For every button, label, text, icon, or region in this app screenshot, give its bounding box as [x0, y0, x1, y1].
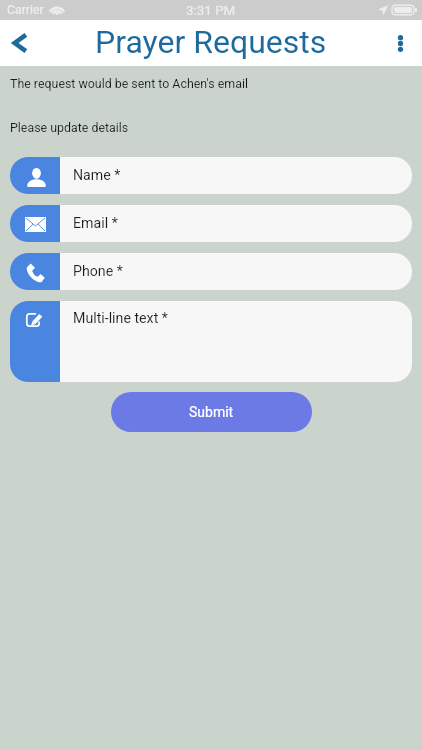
- button[interactable]: Back: [0, 23, 40, 63]
- staticText: 3:31 PM: [186, 3, 236, 19]
- staticText: Prayer Requests: [95, 23, 327, 61]
- button[interactable]: Phone *: [10, 253, 412, 290]
- staticText: Carrier: [7, 3, 44, 17]
- button[interactable]: Submit: [111, 392, 312, 432]
- staticText: Multi-line text *: [73, 310, 168, 327]
- staticText: Email *: [73, 215, 118, 232]
- staticText: Submit: [189, 404, 234, 420]
- staticText: Name *: [73, 167, 121, 184]
- button[interactable]: More options: [378, 21, 422, 65]
- staticText: The request would be sent to Achen's ema…: [10, 76, 248, 91]
- staticText: Please update details: [10, 120, 129, 135]
- button[interactable]: Name *: [10, 157, 412, 194]
- staticText: Phone *: [73, 263, 123, 280]
- button[interactable]: Multi-line text *: [10, 301, 412, 382]
- button[interactable]: Email *: [10, 205, 412, 242]
